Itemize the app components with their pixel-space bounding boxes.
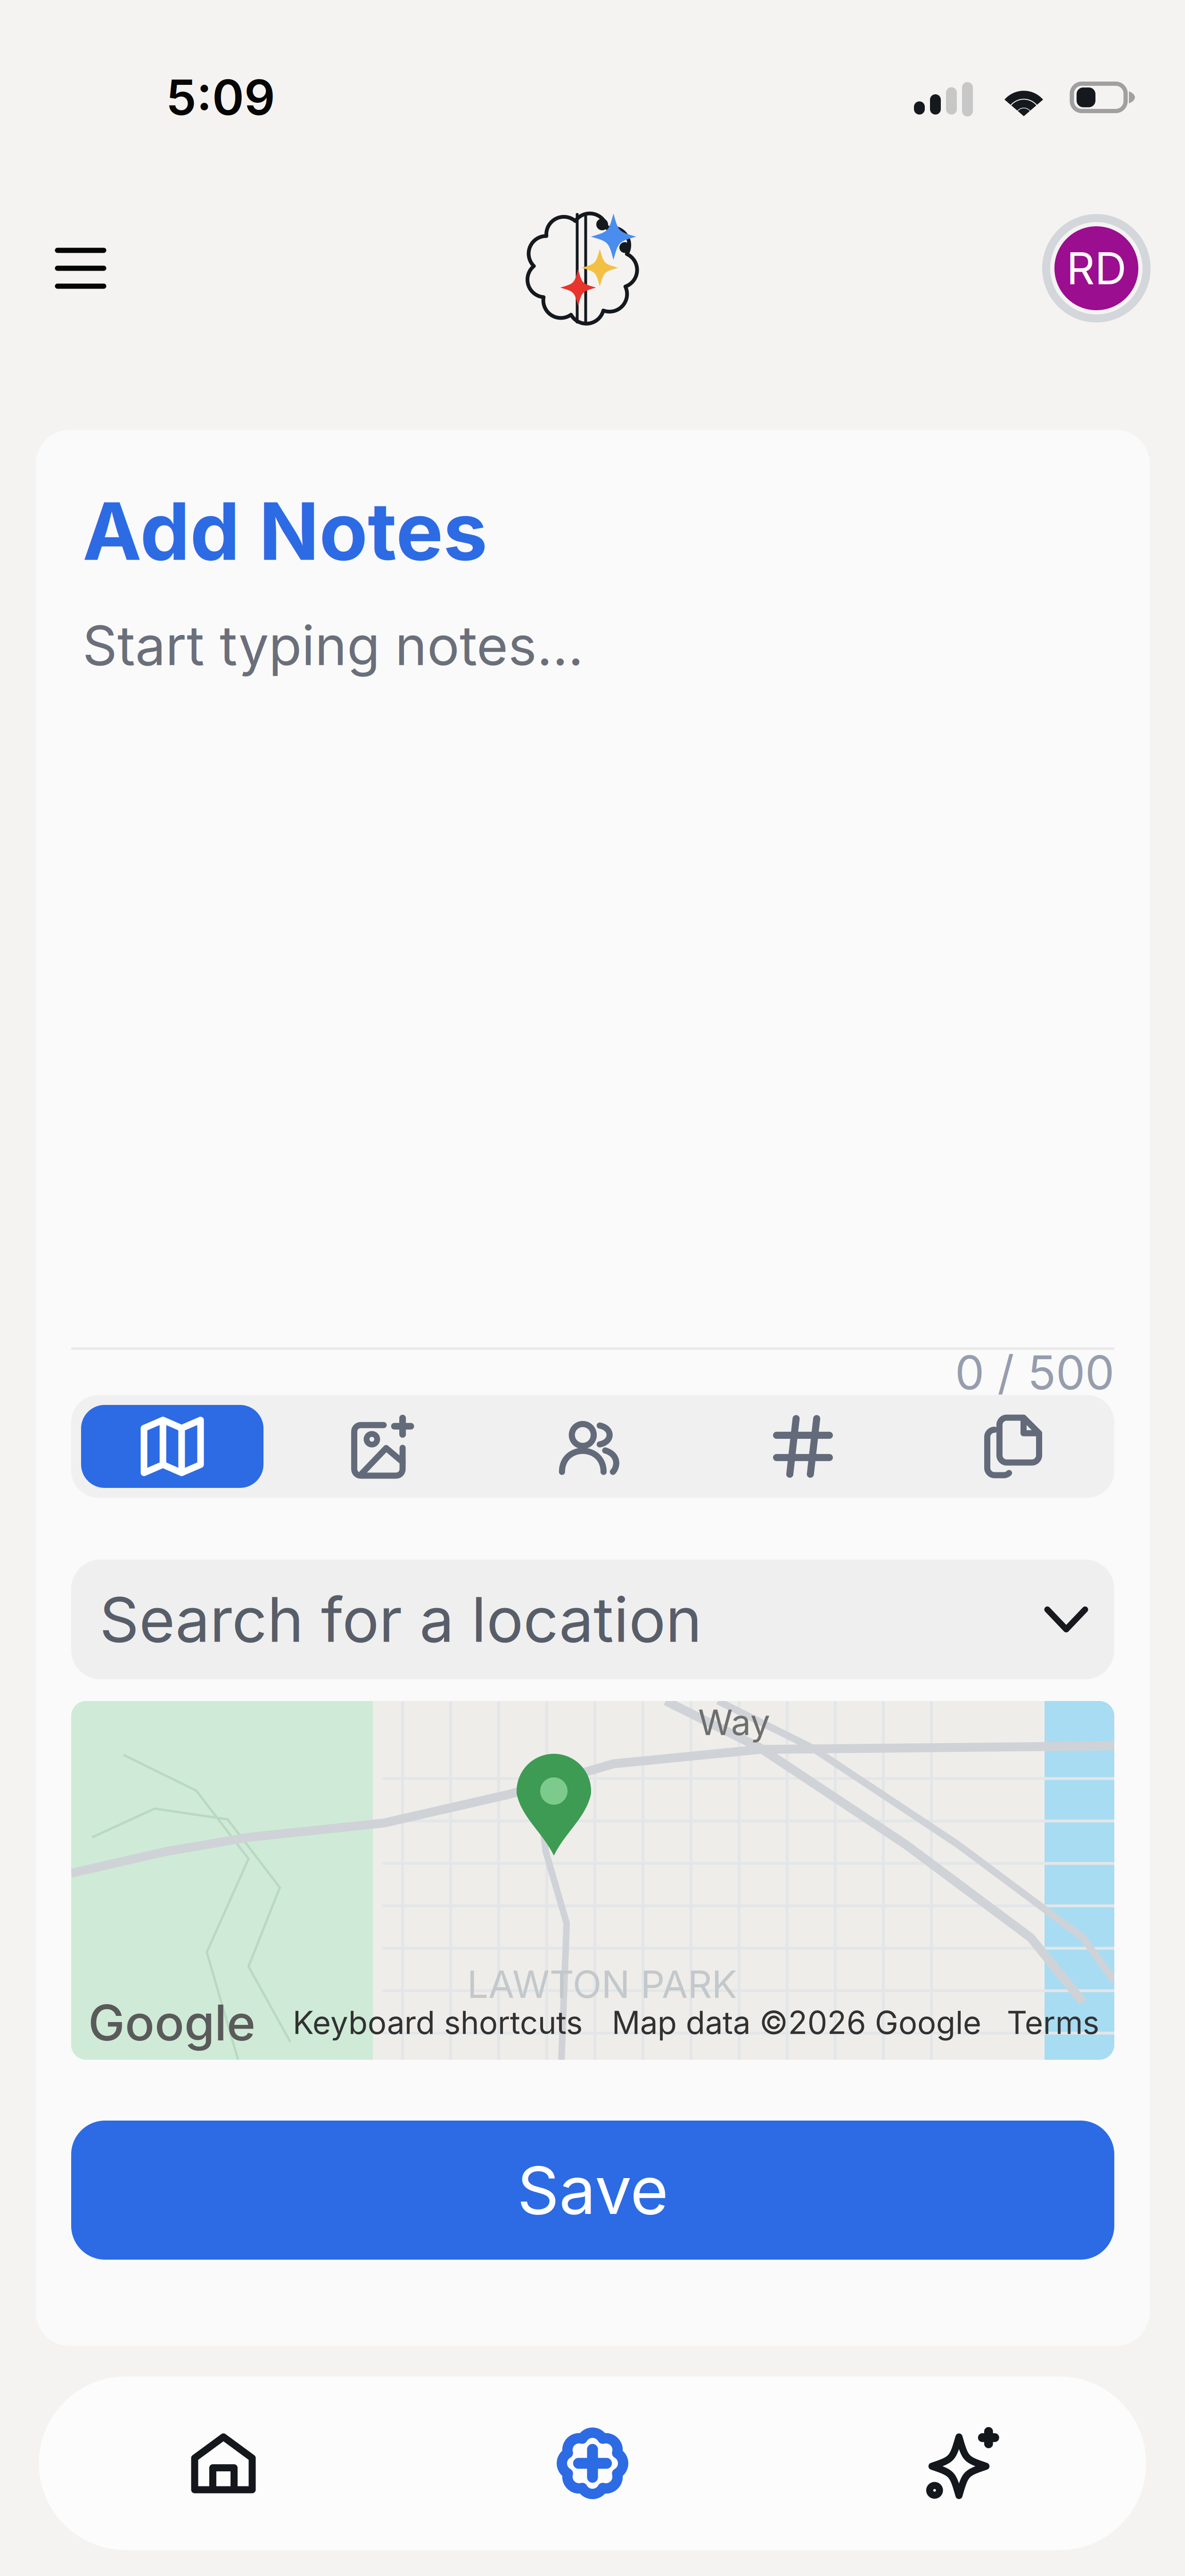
button[interactable]: Menu bbox=[38, 201, 123, 336]
button[interactable]: People bbox=[502, 1405, 684, 1488]
staticText: Way bbox=[698, 1701, 770, 1744]
button[interactable]: Duplicate bbox=[922, 1405, 1104, 1488]
staticText: Save bbox=[517, 2151, 668, 2230]
button[interactable]: AI assistant bbox=[777, 2377, 1146, 2550]
button[interactable]: Home bbox=[39, 2377, 408, 2550]
staticText: Keyboard shortcuts bbox=[293, 2004, 583, 2042]
button[interactable]: Save bbox=[71, 2121, 1114, 2260]
button[interactable]: Location bbox=[81, 1405, 263, 1488]
staticText: Search for a location bbox=[99, 1582, 702, 1657]
button[interactable]: Add photo bbox=[291, 1405, 474, 1488]
button[interactable]: Tags bbox=[712, 1405, 894, 1488]
staticText: 0 / 500 bbox=[955, 1344, 1114, 1401]
staticText: Terms bbox=[1007, 2004, 1099, 2042]
staticText: RD bbox=[1066, 242, 1126, 295]
staticText: Start typing notes... bbox=[82, 613, 584, 678]
staticText: 5:09 bbox=[166, 68, 275, 127]
staticText: Google bbox=[88, 1993, 255, 2052]
staticText: LAWTON PARK bbox=[467, 1961, 737, 2007]
staticText: Map data ©2026 Google bbox=[612, 2004, 981, 2042]
staticText: Add Notes bbox=[82, 483, 487, 579]
button[interactable]: Create bbox=[408, 2377, 777, 2550]
button[interactable]: Search for a location bbox=[71, 1560, 1114, 1679]
button[interactable]: Profile bbox=[1040, 201, 1153, 336]
